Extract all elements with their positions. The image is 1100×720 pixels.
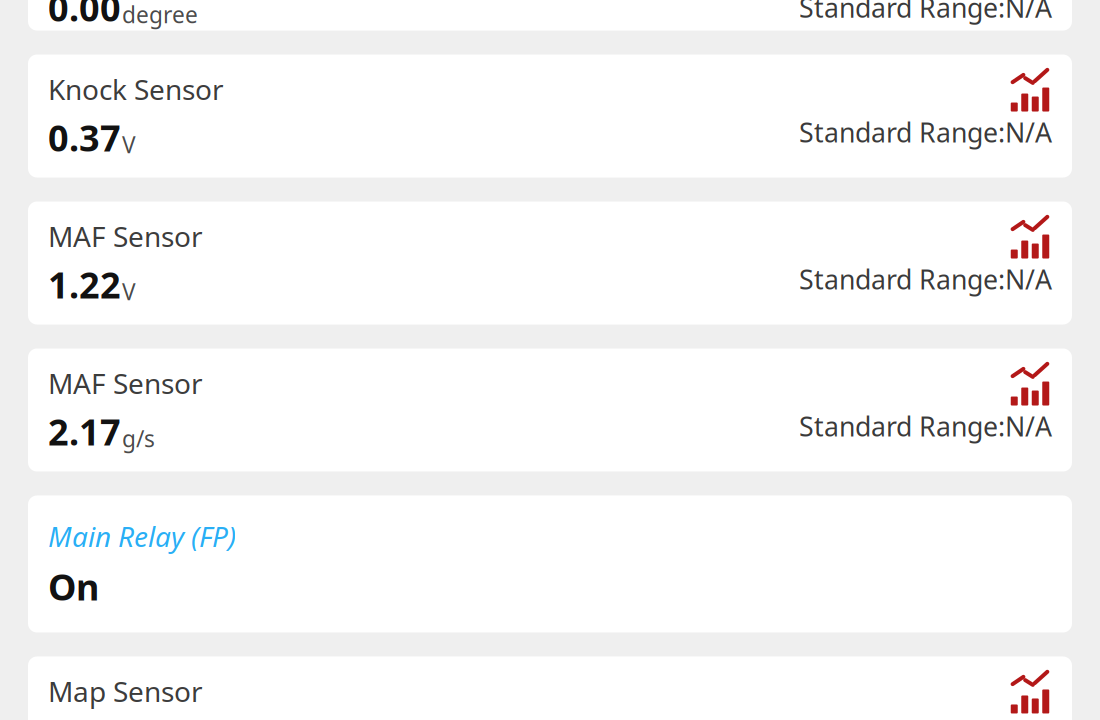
button[interactable]: MAF Sensor	[28, 201, 1072, 324]
button[interactable]: Main Relay (FP)	[28, 495, 1072, 632]
staticText: Standard Range:N/A	[799, 114, 1052, 150]
staticText: Standard Range:N/A	[799, 261, 1052, 297]
staticText: 0.37	[48, 114, 121, 161]
button[interactable]: MAF Sensor	[28, 348, 1072, 471]
staticText: degree	[122, 0, 198, 29]
staticText: g/s	[122, 423, 155, 453]
button[interactable]: Map Sensor	[28, 656, 1072, 720]
staticText: MAF Sensor	[48, 217, 203, 255]
staticText: Main Relay (FP)	[48, 517, 236, 555]
staticText: V	[122, 276, 136, 306]
staticText: 1.22	[48, 261, 121, 308]
staticText: Standard Range:N/A	[799, 408, 1052, 444]
staticText: On	[48, 563, 99, 610]
staticText: V	[122, 129, 136, 159]
staticText: 0.00	[48, 0, 121, 31]
staticText: Standard Range:N/A	[799, 0, 1052, 25]
button[interactable]: Knock Sensor	[28, 54, 1072, 177]
staticText: MAF Sensor	[48, 364, 203, 402]
button[interactable]: 0.00	[28, 0, 1072, 30]
staticText: 2.17	[48, 408, 121, 455]
staticText: Knock Sensor	[48, 70, 224, 108]
staticText: Map Sensor	[48, 672, 203, 710]
